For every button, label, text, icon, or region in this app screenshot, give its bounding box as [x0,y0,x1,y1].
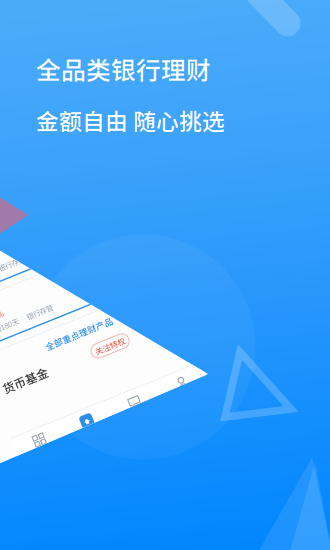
staticText: 银行 [33,428,47,438]
staticText: 全品类银行理财 [36,51,211,87]
button[interactable]: 银行 [15,413,66,438]
staticText: 添利宝A款 [0,241,6,251]
staticText: 银行存管 [23,296,51,307]
staticText: 100元起购 [124,228,157,239]
staticText: % [0,283,3,294]
staticText: 金额自由 随心挑选 [36,104,225,136]
staticText: 全部重点理财产品 [30,330,102,342]
staticText: % [0,228,3,239]
staticText: 关注特权 [74,353,106,365]
button[interactable]: 消息 [66,413,117,438]
